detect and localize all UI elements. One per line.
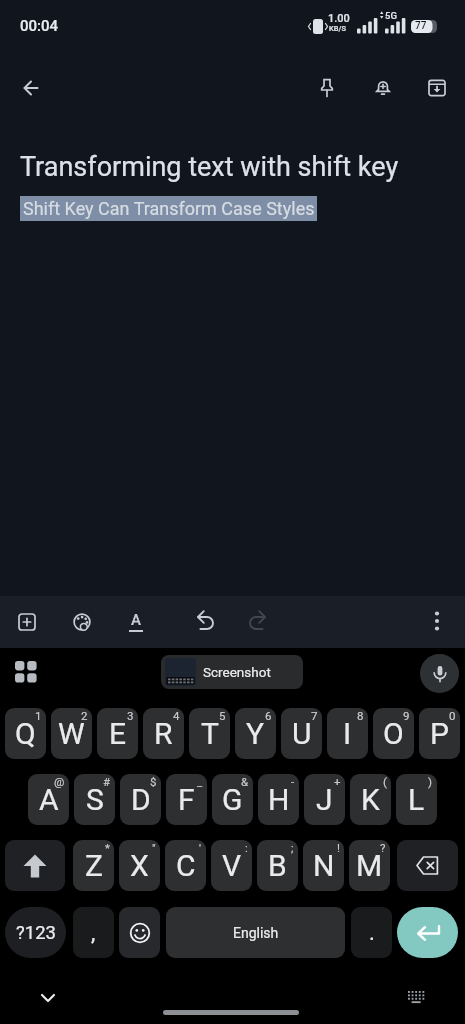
button[interactable]: ?123 <box>5 907 66 958</box>
staticText: R <box>154 716 173 751</box>
staticText: Q <box>15 716 36 751</box>
button[interactable]: V <box>211 840 252 891</box>
staticText: 5 <box>219 709 226 722</box>
staticText: K <box>361 782 380 817</box>
button[interactable]: Q <box>5 708 46 759</box>
button[interactable] <box>397 840 458 891</box>
staticText: 77 <box>415 20 427 32</box>
staticText: C <box>176 848 196 883</box>
button[interactable]: A <box>124 610 148 634</box>
staticText: 7 <box>311 709 318 722</box>
button[interactable]: G <box>212 774 253 825</box>
button[interactable]: I <box>327 708 368 759</box>
staticText: Z <box>85 848 103 883</box>
button[interactable] <box>34 984 62 1012</box>
button[interactable]: J <box>304 774 345 825</box>
staticText: KB/S <box>329 24 346 33</box>
button[interactable] <box>70 610 94 634</box>
staticText: + <box>334 775 341 788</box>
button[interactable] <box>119 907 160 958</box>
staticText: : <box>245 841 248 854</box>
button[interactable] <box>315 76 339 100</box>
staticText: English <box>233 925 279 941</box>
button[interactable]: X <box>119 840 160 891</box>
staticText: ? <box>380 841 386 854</box>
button[interactable]: H <box>258 774 299 825</box>
staticText: ! <box>337 841 340 854</box>
button[interactable]: K <box>350 774 391 825</box>
staticText: T <box>201 716 219 751</box>
button[interactable]: A <box>28 774 69 825</box>
staticText: 5G <box>385 10 397 21</box>
staticText: O <box>383 716 404 751</box>
staticText: S <box>86 782 104 817</box>
staticText: Transforming text with shift key <box>20 151 399 183</box>
button[interactable] <box>11 657 41 687</box>
button[interactable] <box>425 76 449 100</box>
staticText: P <box>430 716 449 751</box>
button[interactable]: English <box>166 907 345 958</box>
button[interactable] <box>425 609 449 633</box>
staticText: W <box>58 716 85 751</box>
staticText: 6 <box>265 709 272 722</box>
staticText: 0 <box>449 709 456 722</box>
staticText: E <box>109 716 127 751</box>
button[interactable]: M <box>349 840 390 891</box>
button[interactable]: S <box>74 774 115 825</box>
button[interactable]: R <box>143 708 184 759</box>
staticText: X <box>130 848 149 883</box>
staticText: " <box>152 841 156 854</box>
button[interactable]: N <box>303 840 344 891</box>
staticText: @ <box>54 775 65 788</box>
button[interactable]: O <box>373 708 414 759</box>
staticText: 1 <box>35 709 42 722</box>
button[interactable] <box>402 984 430 1012</box>
button[interactable] <box>19 76 43 100</box>
button[interactable]: T <box>189 708 230 759</box>
staticText: J <box>316 782 333 817</box>
button[interactable]: , <box>73 907 114 958</box>
button[interactable]: . <box>351 907 392 958</box>
button[interactable]: Screenshot <box>161 655 303 689</box>
staticText: B <box>268 848 287 883</box>
staticText: 2 <box>81 709 88 722</box>
staticText: 8 <box>357 709 364 722</box>
button[interactable] <box>420 654 459 693</box>
button[interactable]: E <box>97 708 138 759</box>
button[interactable] <box>5 840 65 891</box>
staticText: ' <box>199 841 202 854</box>
staticText: # <box>103 775 111 788</box>
staticText: A <box>131 611 141 629</box>
staticText: Shift Key Can Transform Case Styles <box>23 198 315 219</box>
staticText: $ <box>150 775 157 788</box>
staticText: 1.00 <box>328 12 350 25</box>
staticText: ?123 <box>16 922 56 944</box>
button[interactable]: B <box>257 840 298 891</box>
staticText: V <box>222 848 242 883</box>
staticText: I <box>343 716 352 751</box>
button[interactable] <box>245 609 269 633</box>
staticText: ( <box>383 775 387 788</box>
button[interactable]: Y <box>235 708 276 759</box>
staticText: M <box>356 848 383 883</box>
button[interactable]: P <box>419 708 460 759</box>
staticText: , <box>91 920 96 946</box>
button[interactable]: Z <box>73 840 114 891</box>
button[interactable]: F <box>166 774 207 825</box>
staticText: D <box>131 782 151 817</box>
staticText: & <box>241 775 249 788</box>
button[interactable] <box>371 76 395 100</box>
button[interactable]: D <box>120 774 161 825</box>
button[interactable]: L <box>396 774 437 825</box>
button[interactable]: W <box>51 708 92 759</box>
staticText: L <box>408 782 425 817</box>
button[interactable]: C <box>165 840 206 891</box>
button[interactable] <box>194 609 218 633</box>
staticText: 3 <box>127 709 134 722</box>
button[interactable]: U <box>281 708 322 759</box>
button[interactable] <box>397 907 458 958</box>
button[interactable] <box>15 610 39 634</box>
staticText: A <box>39 782 59 817</box>
staticText: H <box>268 782 290 817</box>
staticText: ; <box>291 841 294 854</box>
